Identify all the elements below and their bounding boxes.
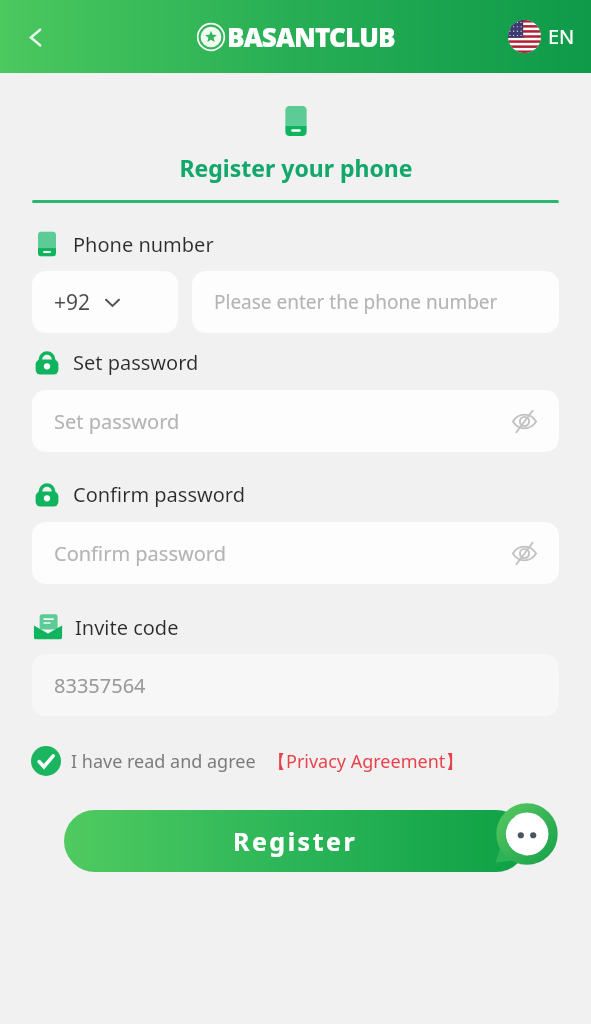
button[interactable]: Language English — [508, 20, 575, 53]
staticText: Invite code — [75, 614, 179, 641]
button[interactable]: Confirm password — [32, 522, 559, 584]
button[interactable]: Show password — [503, 532, 545, 574]
staticText: Please enter the phone number — [214, 289, 498, 315]
staticText: Confirm password — [54, 540, 503, 567]
staticText: Register your phone — [179, 152, 413, 183]
staticText: EN — [548, 23, 575, 50]
staticText: 【Privacy Agreement】 — [268, 749, 464, 774]
button[interactable]: Show password — [503, 400, 545, 442]
button[interactable]: Customer support chat — [496, 803, 558, 865]
button[interactable]: Set password — [32, 390, 559, 452]
button[interactable]: Register — [64, 810, 527, 872]
button[interactable]: +92 — [32, 271, 178, 333]
button[interactable]: 83357564 — [32, 654, 559, 716]
staticText: BASANTCLUB — [227, 19, 395, 54]
button[interactable]: Please enter the phone number — [192, 271, 559, 333]
staticText: Set password — [54, 408, 503, 435]
button[interactable]: Agree to privacy agreement — [29, 744, 63, 778]
button[interactable]: Back — [12, 14, 58, 60]
button[interactable]: 【Privacy Agreement】 — [268, 749, 464, 774]
staticText: I have read and agree — [71, 749, 256, 774]
staticText: Register — [233, 824, 358, 858]
staticText: +92 — [54, 288, 91, 317]
staticText: 83357564 — [54, 672, 146, 699]
staticText: Confirm password — [73, 481, 245, 508]
staticText: Set password — [73, 349, 199, 376]
staticText: Phone number — [73, 231, 214, 258]
